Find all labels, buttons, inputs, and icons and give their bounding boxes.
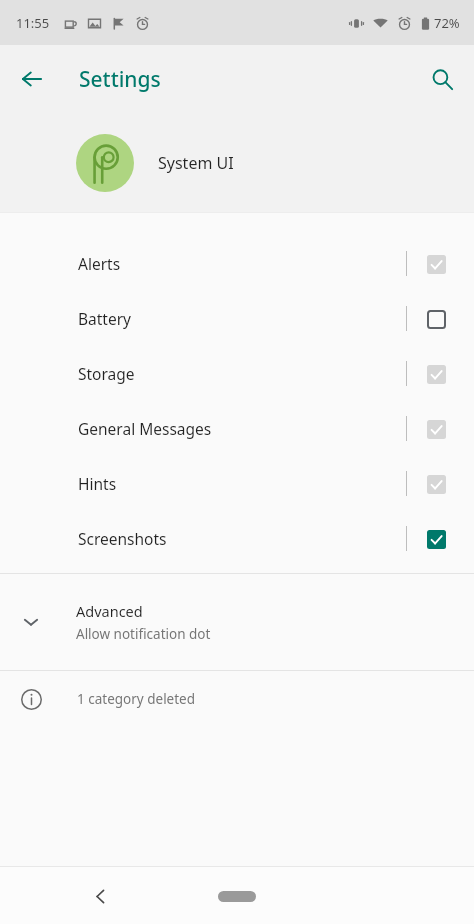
button[interactable]: Home	[207, 881, 267, 911]
button[interactable]: Battery	[0, 291, 474, 346]
button[interactable]: Alerts toggle	[418, 246, 454, 282]
staticText: General Messages	[78, 418, 212, 439]
staticText: Battery	[78, 308, 132, 329]
button[interactable]: General Messages toggle	[418, 411, 454, 447]
button[interactable]: System UI	[0, 113, 474, 212]
button[interactable]: Hints toggle	[418, 466, 454, 502]
button[interactable]: Storage	[0, 346, 474, 401]
staticText: 72%	[434, 14, 460, 32]
button[interactable]: Back	[78, 874, 122, 918]
staticText: System UI	[158, 152, 234, 174]
staticText: Allow notification dot	[76, 625, 211, 643]
staticText: 1 category deleted	[77, 690, 196, 708]
staticText: Settings	[79, 65, 161, 94]
button[interactable]: General Messages	[0, 401, 474, 456]
button[interactable]: Hints	[0, 456, 474, 511]
staticText: 11:55	[16, 14, 50, 32]
button[interactable]: Alerts	[0, 236, 474, 291]
button[interactable]: Advanced	[0, 574, 474, 670]
button[interactable]: Back	[8, 55, 56, 103]
button[interactable]: Screenshots	[0, 511, 474, 566]
staticText: Advanced	[76, 601, 143, 621]
button[interactable]: Screenshots toggle	[418, 521, 454, 557]
staticText: Screenshots	[78, 528, 167, 549]
staticText: Alerts	[78, 253, 121, 274]
button[interactable]: Storage toggle	[418, 356, 454, 392]
button[interactable]: Battery toggle	[418, 301, 454, 337]
staticText: Storage	[78, 363, 135, 384]
staticText: Hints	[78, 473, 117, 494]
button[interactable]: 1 category deleted	[0, 671, 474, 727]
button[interactable]: Search	[418, 55, 466, 103]
